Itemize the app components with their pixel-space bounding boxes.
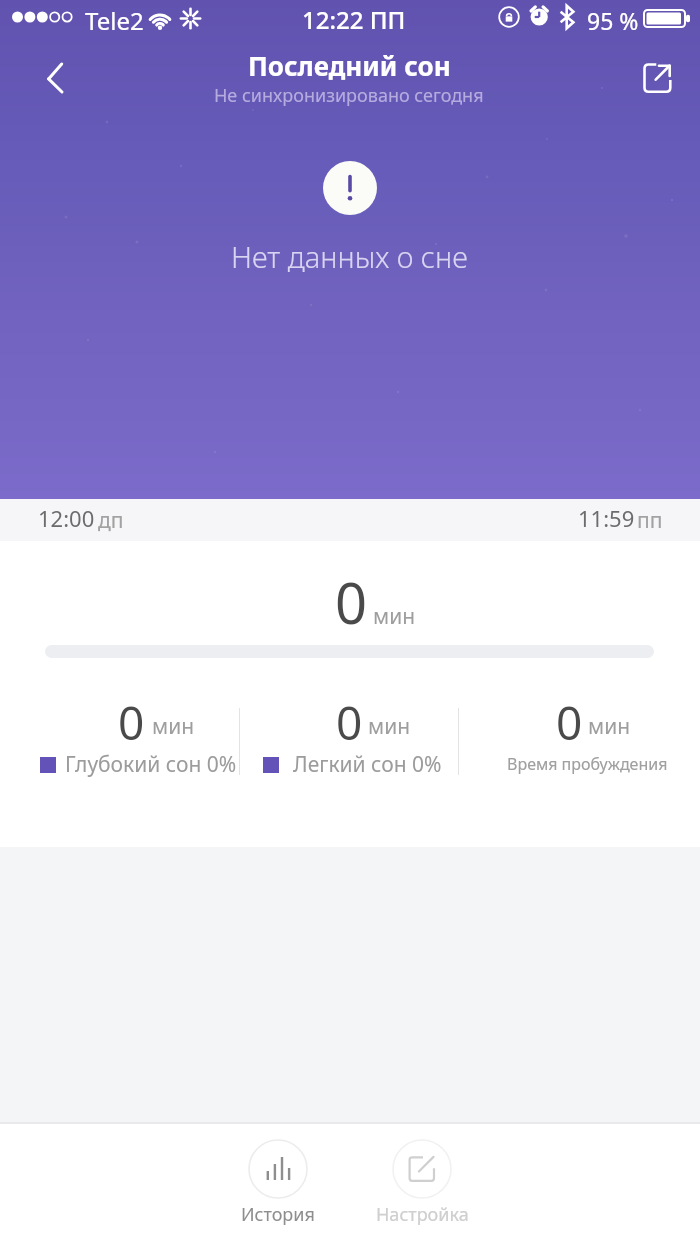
staticText: Нет данных о сне xyxy=(231,237,468,276)
staticText: 0 xyxy=(335,564,368,640)
staticText: 0 xyxy=(336,691,363,754)
staticText: мин xyxy=(368,712,411,741)
staticText: Глубокий сон 0% xyxy=(65,750,237,779)
staticText: 0 xyxy=(118,691,145,754)
staticText: 12:22 ПП xyxy=(302,3,406,36)
button[interactable]: История xyxy=(229,1127,347,1231)
staticText: мин xyxy=(373,602,416,631)
staticText: 0 xyxy=(556,691,583,754)
staticText: Tele2 xyxy=(85,4,144,37)
button[interactable]: Настройка xyxy=(364,1127,482,1231)
staticText: Последний сон xyxy=(248,48,451,83)
staticText: дп xyxy=(98,506,124,535)
button[interactable]: Back xyxy=(34,54,78,98)
staticText: Время пробуждения xyxy=(507,753,668,775)
staticText: 11:59 xyxy=(578,503,635,533)
staticText: мин xyxy=(152,712,195,741)
staticText: Легкий сон 0% xyxy=(293,750,442,779)
staticText: История xyxy=(241,1202,315,1227)
button[interactable]: Share xyxy=(638,58,678,98)
staticText: 12:00 xyxy=(38,503,95,533)
staticText: Не синхронизировано сегодня xyxy=(214,83,484,108)
staticText: 95 % xyxy=(587,5,639,36)
staticText: пп xyxy=(637,506,663,535)
staticText: Настройка xyxy=(376,1202,469,1227)
staticText: мин xyxy=(588,712,631,741)
